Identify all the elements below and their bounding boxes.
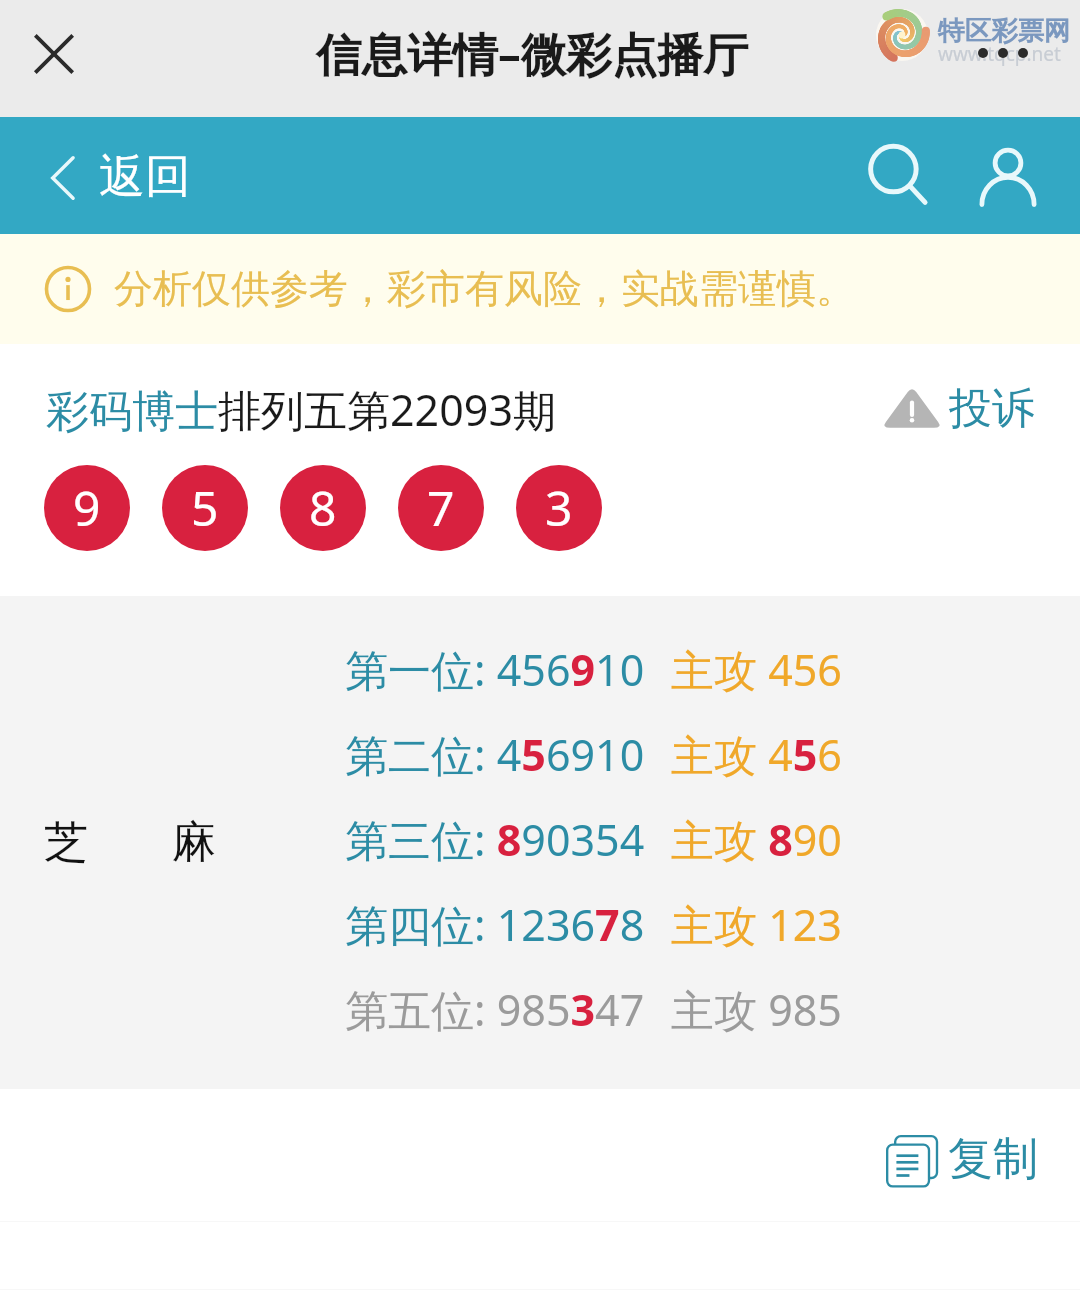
staticText: 返回 xyxy=(99,148,191,206)
staticText: 投诉 xyxy=(949,382,1035,436)
staticText: 信息详情–微彩点播厅 xyxy=(316,22,749,84)
button[interactable]: Search xyxy=(846,122,954,230)
staticText: 第三位: 890354 xyxy=(345,810,645,869)
staticText: 芝 xyxy=(44,815,88,870)
staticText: 主攻 456 xyxy=(671,725,842,784)
staticText: 主攻 123 xyxy=(671,895,842,954)
staticText: 特区彩票网 xyxy=(938,14,1071,47)
staticText: 主攻 456 xyxy=(671,640,842,699)
staticText: www.tqcp.net xyxy=(938,41,1061,67)
button[interactable]: 复制 xyxy=(870,1124,1050,1197)
staticText: 主攻 985 xyxy=(671,980,842,1039)
staticText: 分析仅供参考，彩市有风险，实战需谨慎。 xyxy=(114,264,855,313)
staticText: 彩码博士排列五第22093期 xyxy=(46,380,556,439)
staticText: 5 xyxy=(191,475,219,540)
button[interactable]: 投诉 xyxy=(881,376,1035,442)
staticText: 麻 xyxy=(172,815,216,870)
button[interactable]: Close xyxy=(18,18,90,90)
staticText: 7 xyxy=(427,475,455,540)
button[interactable]: 返回 xyxy=(47,149,191,207)
staticText: 第二位: 456910 xyxy=(345,725,645,784)
staticText: 主攻 890 xyxy=(671,810,842,869)
staticText: 8 xyxy=(309,475,337,540)
staticText: 第一位: 456910 xyxy=(345,640,645,699)
staticText: 第五位: 985347 xyxy=(345,980,645,1039)
staticText: 3 xyxy=(545,475,573,540)
staticText: 第四位: 123678 xyxy=(345,895,645,954)
staticText: 9 xyxy=(73,475,101,540)
button[interactable]: Account xyxy=(954,122,1062,230)
staticText: 复制 xyxy=(948,1131,1038,1188)
